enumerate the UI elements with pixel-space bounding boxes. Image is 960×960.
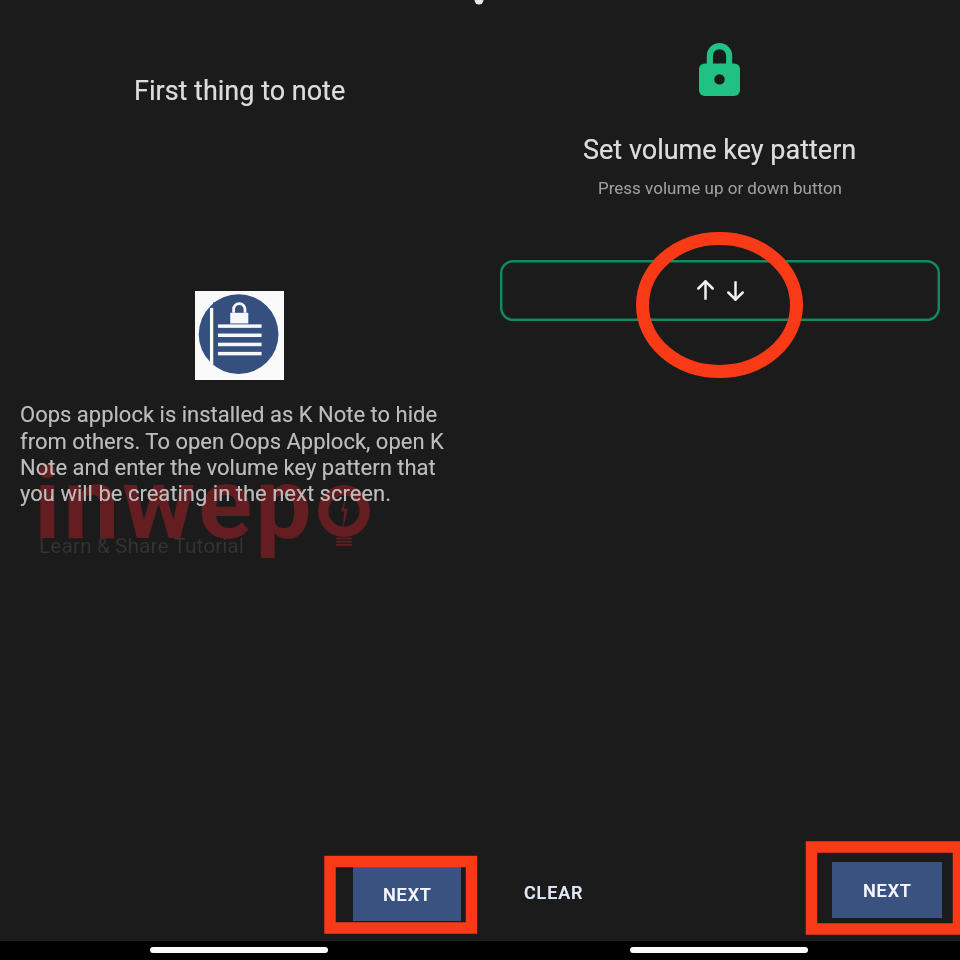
- button[interactable]: Volume key pattern: up, down: [500, 260, 940, 321]
- staticText: Press volume up or down button: [598, 178, 842, 198]
- staticText: inwep: [34, 445, 315, 562]
- staticText: First thing to note: [134, 75, 346, 107]
- other: Home gesture bar: [150, 947, 328, 953]
- staticText: Oops applock is installed as K Note to h…: [20, 402, 456, 506]
- button[interactable]: NEXT: [353, 867, 461, 921]
- staticText: NEXT: [863, 880, 912, 901]
- staticText: Learn & Share Tutorial: [39, 534, 244, 559]
- staticText: Set volume key pattern: [583, 134, 857, 166]
- staticText: CLEAR: [524, 882, 584, 903]
- other: K Note app icon: [195, 291, 284, 380]
- other: Secure lock: [699, 43, 740, 96]
- button[interactable]: CLEAR: [508, 873, 600, 911]
- button[interactable]: NEXT: [832, 862, 942, 918]
- staticText: NEXT: [383, 884, 432, 905]
- other: Home gesture bar: [630, 947, 808, 953]
